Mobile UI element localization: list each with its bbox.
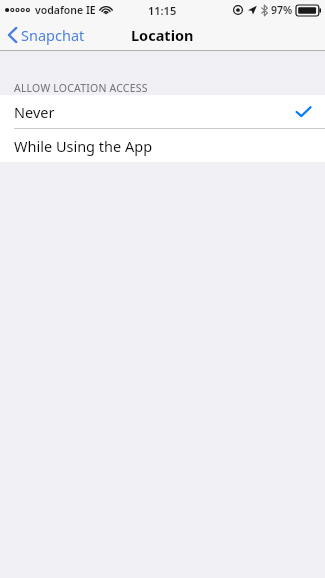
staticText: Location [131, 25, 194, 45]
other: Selected [296, 106, 311, 118]
staticText: ALLOW LOCATION ACCESS [14, 81, 148, 95]
staticText: 97% [271, 3, 293, 17]
staticText: vodafone IE [35, 3, 96, 17]
staticText: 11:15 [148, 3, 177, 18]
staticText: Snapchat [21, 25, 85, 45]
button[interactable]: Snapchat [0, 20, 93, 50]
staticText: While Using the App [14, 136, 153, 156]
button[interactable]: Never [0, 95, 325, 128]
staticText: Never [14, 102, 55, 122]
button[interactable]: While Using the App [0, 129, 325, 162]
